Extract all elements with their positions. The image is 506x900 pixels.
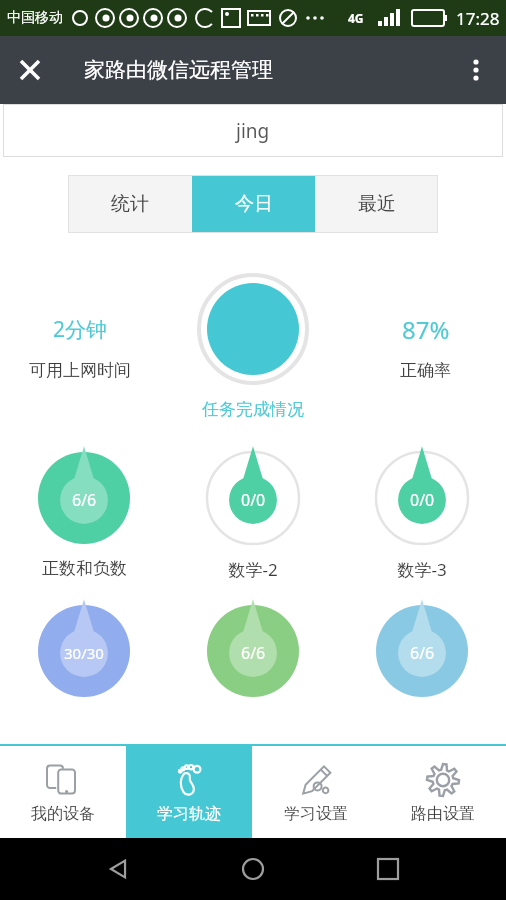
button[interactable]: 学习设置 <box>252 746 379 838</box>
staticText: 中国移动 <box>7 9 63 27</box>
button[interactable]: 最近 <box>315 175 438 233</box>
staticText: 6/6 <box>241 642 266 664</box>
button[interactable]: Recents <box>366 847 410 891</box>
button[interactable]: More options <box>446 40 506 100</box>
staticText: 学习设置 <box>284 804 348 824</box>
button[interactable]: jing <box>3 104 503 157</box>
staticText: 6/6 <box>72 489 97 511</box>
button[interactable]: 30/30 <box>0 603 168 699</box>
button[interactable]: 我的设备 <box>0 746 126 838</box>
button[interactable]: 统计 <box>68 175 192 233</box>
staticText: 数学-3 <box>397 558 447 581</box>
button[interactable]: 路由设置 <box>379 746 506 838</box>
staticText: 数学-2 <box>228 558 278 581</box>
staticText: 学习轨迹 <box>157 804 221 824</box>
button[interactable]: 0/0 <box>337 450 506 581</box>
button[interactable]: 6/6 <box>0 450 168 579</box>
staticText: 17:28 <box>456 7 500 30</box>
staticText: 最近 <box>358 192 396 216</box>
button[interactable]: 学习轨迹 <box>126 746 252 838</box>
staticText: 统计 <box>111 192 149 216</box>
staticText: 路由设置 <box>411 804 475 824</box>
staticText: 任务完成情况 <box>202 399 304 420</box>
staticText: 2分钟 <box>53 315 108 344</box>
staticText: 可用上网时间 <box>29 360 131 381</box>
staticText: 今日 <box>235 192 273 216</box>
button[interactable]: Back <box>96 847 140 891</box>
staticText: 30/30 <box>64 643 104 663</box>
staticText: 我的设备 <box>31 804 95 824</box>
staticText: jing <box>236 118 270 144</box>
button[interactable]: 0/0 <box>168 450 337 581</box>
staticText: 0/0 <box>410 489 435 511</box>
button[interactable]: Close <box>0 40 60 100</box>
staticText: 正数和负数 <box>42 558 127 579</box>
button[interactable]: Home <box>231 847 275 891</box>
staticText: 6/6 <box>410 642 435 664</box>
button[interactable]: 6/6 <box>337 603 506 699</box>
staticText: 正确率 <box>400 360 451 381</box>
staticText: 4G <box>348 10 364 26</box>
button[interactable]: 6/6 <box>168 603 337 699</box>
staticText: 0/0 <box>241 489 266 511</box>
button[interactable]: 今日 <box>192 175 315 233</box>
staticText: 87% <box>402 313 450 346</box>
staticText: 家路由微信远程管理 <box>84 57 273 83</box>
